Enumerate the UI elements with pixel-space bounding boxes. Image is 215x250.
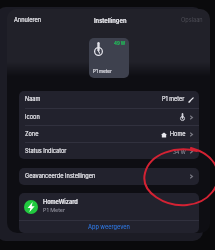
- button[interactable]: Icoon: [19, 109, 199, 125]
- button[interactable]: HomeWizard: [19, 193, 199, 220]
- staticText: HomeWizard: [43, 199, 78, 206]
- button[interactable]: 49 W: [89, 38, 129, 78]
- staticText: Zone: [25, 131, 39, 138]
- staticText: P1 Meter: [43, 207, 66, 214]
- staticText: Icoon: [25, 114, 40, 121]
- button[interactable]: App weergeven: [19, 221, 199, 233]
- staticText: P1 meter: [93, 69, 112, 75]
- button[interactable]: Naam: [19, 91, 199, 108]
- staticText: Status Indicator: [25, 148, 67, 155]
- staticText: 34 W: [173, 149, 186, 155]
- button[interactable]: Geavanceerde Instellingen: [19, 168, 199, 185]
- staticText: Opslaan: [181, 17, 203, 24]
- staticText: Instellingen: [94, 17, 127, 24]
- button[interactable]: Status Indicator: [19, 143, 199, 159]
- staticText: P1 meter: [162, 96, 185, 103]
- staticText: Annuleren: [14, 17, 41, 24]
- staticText: 49 W: [114, 41, 126, 46]
- button[interactable]: Zone: [19, 126, 199, 142]
- staticText: App weergeven: [88, 224, 130, 231]
- button[interactable]: Opslaan: [179, 15, 205, 26]
- staticText: Naam: [25, 96, 41, 103]
- button[interactable]: Annuleren: [12, 15, 43, 26]
- staticText: Home: [170, 131, 186, 138]
- staticText: Geavanceerde Instellingen: [25, 173, 96, 180]
